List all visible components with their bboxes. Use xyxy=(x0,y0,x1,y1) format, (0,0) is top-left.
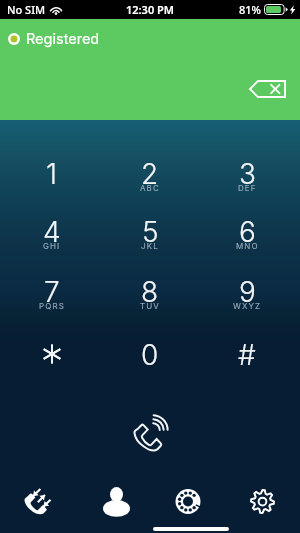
button[interactable]: Settings xyxy=(230,478,294,524)
button[interactable]: Call xyxy=(122,404,178,460)
button[interactable]: 5 xyxy=(109,199,191,263)
button[interactable]: Recent calls xyxy=(5,478,69,524)
staticText: WXYZ xyxy=(233,301,262,311)
staticText: 9 xyxy=(239,275,256,309)
button[interactable]: # xyxy=(206,322,288,386)
staticText: 12:30 PM xyxy=(126,2,175,17)
button[interactable]: Keypad xyxy=(156,478,220,524)
button[interactable] xyxy=(11,322,93,386)
staticText: 3 xyxy=(239,157,256,191)
staticText: Registered xyxy=(26,30,100,48)
staticText: PQRS xyxy=(39,301,65,311)
staticText: 0 xyxy=(141,338,159,372)
staticText: 4 xyxy=(43,215,61,249)
staticText: 5 xyxy=(142,215,159,249)
button[interactable]: 7 xyxy=(11,259,93,323)
staticText: 8 xyxy=(141,275,159,309)
button[interactable]: 6 xyxy=(206,199,288,263)
staticText: # xyxy=(238,338,256,372)
staticText: 6 xyxy=(239,215,256,249)
button[interactable]: 9 xyxy=(206,259,288,323)
staticText: TUV xyxy=(140,301,160,311)
button[interactable]: 8 xyxy=(109,259,191,323)
button[interactable]: 2 xyxy=(109,141,191,205)
button[interactable]: Backspace xyxy=(241,75,293,103)
button[interactable]: 0 xyxy=(109,322,191,386)
staticText: 81% xyxy=(239,2,261,17)
button[interactable]: Contacts xyxy=(84,478,148,524)
staticText: No SIM xyxy=(7,2,46,17)
button[interactable]: 3 xyxy=(206,141,288,205)
button[interactable]: 1 xyxy=(11,141,93,205)
staticText: JKL xyxy=(141,241,159,251)
staticText: DEF xyxy=(238,183,257,193)
staticText: GHI xyxy=(43,241,61,251)
staticText: 7 xyxy=(44,275,60,309)
button[interactable]: 4 xyxy=(11,199,93,263)
staticText: 2 xyxy=(141,157,159,191)
staticText: 1 xyxy=(46,157,58,191)
staticText: MNO xyxy=(236,241,259,251)
staticText: ABC xyxy=(140,183,160,193)
